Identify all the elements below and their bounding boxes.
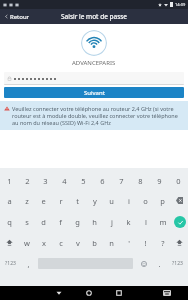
button[interactable]: o: [137, 190, 154, 211]
button[interactable]: Recents: [104, 286, 134, 300]
staticText: ?123: [172, 260, 183, 267]
button[interactable]: m: [154, 211, 171, 232]
button[interactable]: ?123: [0, 253, 21, 274]
button[interactable]: s: [18, 211, 35, 232]
button[interactable]: p: [154, 190, 171, 211]
staticText: 5: [81, 176, 86, 186]
staticText: e: [41, 196, 46, 206]
button[interactable]: 2: [18, 172, 36, 190]
button[interactable]: d: [35, 211, 52, 232]
button[interactable]: c: [52, 232, 69, 253]
staticText: y: [93, 196, 97, 206]
button[interactable]: 9: [150, 172, 169, 190]
button[interactable]: y: [86, 190, 103, 211]
staticText: 1: [7, 176, 12, 186]
button[interactable]: w: [18, 232, 35, 253]
button[interactable]: ,: [21, 253, 36, 274]
button[interactable]: h: [86, 211, 103, 232]
button[interactable]: t: [69, 190, 86, 211]
button[interactable]: Backspace: [171, 190, 188, 211]
button[interactable]: q: [0, 211, 18, 232]
staticText: w: [24, 238, 30, 248]
staticText: Veuillez connecter votre téléphone au ro…: [12, 105, 184, 126]
button[interactable]: 3: [36, 172, 55, 190]
button[interactable]: a: [0, 190, 18, 211]
button[interactable]: 7: [112, 172, 131, 190]
button[interactable]: u: [103, 190, 120, 211]
button[interactable]: b: [86, 232, 103, 253]
button[interactable]: z: [18, 190, 35, 211]
button[interactable]: Shift: [0, 232, 18, 253]
staticText: ADVANCEPARIS: [72, 59, 116, 67]
button[interactable]: 8: [131, 172, 150, 190]
staticText: 14:09: [175, 2, 186, 7]
staticText: k: [126, 217, 131, 227]
staticText: 4: [62, 176, 67, 186]
staticText: 0: [176, 176, 181, 186]
button[interactable]: f: [52, 211, 69, 232]
staticText: 8: [138, 176, 143, 186]
staticText: j: [111, 217, 113, 227]
staticText: g: [75, 217, 80, 227]
staticText: n: [109, 238, 114, 248]
button[interactable]: Emoji: [135, 253, 152, 274]
button[interactable]: Valider: [171, 211, 188, 232]
staticText: Saisir le mot de passe: [61, 12, 128, 21]
button[interactable]: ': [120, 232, 137, 253]
staticText: t: [76, 196, 79, 206]
button[interactable]: Home: [74, 286, 104, 300]
button[interactable]: i: [120, 190, 137, 211]
staticText: l: [145, 217, 147, 227]
button[interactable]: e: [35, 190, 52, 211]
button[interactable]: ?: [154, 232, 171, 253]
staticText: 9: [157, 176, 162, 186]
button[interactable]: 5: [74, 172, 93, 190]
staticText: ,: [27, 259, 30, 269]
staticText: i: [128, 196, 130, 206]
button[interactable]: g: [69, 211, 86, 232]
staticText: c: [59, 238, 63, 248]
staticText: p: [160, 196, 165, 206]
button[interactable]: [4, 72, 184, 85]
staticText: q: [7, 217, 12, 227]
button[interactable]: 1: [0, 172, 18, 190]
button[interactable]: !: [137, 232, 154, 253]
staticText: Retour: [10, 13, 30, 21]
button[interactable]: Back: [43, 286, 74, 300]
button[interactable]: x: [35, 232, 52, 253]
staticText: 7: [119, 176, 124, 186]
button[interactable]: 4: [55, 172, 74, 190]
button[interactable]: l: [137, 211, 154, 232]
button[interactable]: .: [152, 253, 167, 274]
staticText: Suivant: [84, 89, 105, 97]
staticText: m: [159, 217, 167, 227]
staticText: 3: [43, 176, 48, 186]
button[interactable]: j: [103, 211, 120, 232]
staticText: h: [92, 217, 97, 227]
staticText: r: [59, 196, 63, 206]
button[interactable]: 6: [93, 172, 112, 190]
button[interactable]: n: [103, 232, 120, 253]
staticText: 2: [25, 176, 30, 186]
staticText: v: [76, 238, 80, 248]
staticText: a: [7, 196, 12, 206]
button[interactable]: Shift: [171, 232, 188, 253]
staticText: z: [25, 196, 29, 206]
staticText: .: [158, 259, 161, 269]
button[interactable]: k: [120, 211, 137, 232]
staticText: 6: [100, 176, 105, 186]
button[interactable]: Keyboard: [152, 286, 182, 300]
button[interactable]: v: [69, 232, 86, 253]
button[interactable]: Suivant: [4, 87, 184, 98]
button[interactable]: Retour: [0, 9, 34, 24]
staticText: s: [25, 217, 29, 227]
staticText: !: [144, 238, 147, 248]
button[interactable]: ?123: [167, 253, 188, 274]
staticText: ?123: [5, 260, 16, 267]
button[interactable]: r: [52, 190, 69, 211]
staticText: ': [128, 238, 130, 248]
button[interactable]: 0: [169, 172, 188, 190]
staticText: o: [143, 196, 148, 206]
staticText: d: [41, 217, 46, 227]
